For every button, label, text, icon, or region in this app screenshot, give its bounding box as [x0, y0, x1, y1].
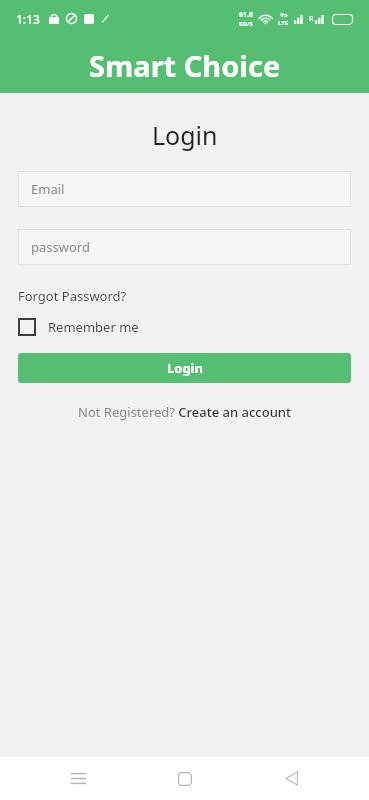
staticText: Forgot Password? — [18, 287, 127, 305]
staticText: password — [31, 238, 90, 256]
staticText: Remember me — [48, 318, 139, 336]
staticText: 61.0 — [239, 10, 253, 20]
staticText: LTE — [278, 19, 289, 27]
staticText: Smart Choice — [89, 46, 281, 85]
staticText: Vo — [280, 11, 288, 19]
button[interactable]: Recent apps — [50, 757, 106, 800]
button[interactable]: Email — [18, 171, 351, 207]
button[interactable]: Login — [18, 353, 351, 383]
button[interactable]: password — [18, 229, 351, 265]
staticText: Email — [31, 180, 65, 198]
staticText: R — [309, 14, 314, 24]
button[interactable]: Home — [157, 757, 213, 800]
staticText: Login — [167, 359, 203, 377]
button[interactable]: Not Registered? Create an account — [78, 403, 291, 421]
button[interactable]: Remember me — [18, 318, 139, 336]
staticText: KB/S — [239, 20, 253, 28]
staticText: 1:13 — [16, 11, 40, 27]
button[interactable]: Back — [263, 757, 319, 800]
staticText: Login — [152, 118, 218, 152]
button[interactable]: Forgot Password? — [18, 287, 127, 305]
